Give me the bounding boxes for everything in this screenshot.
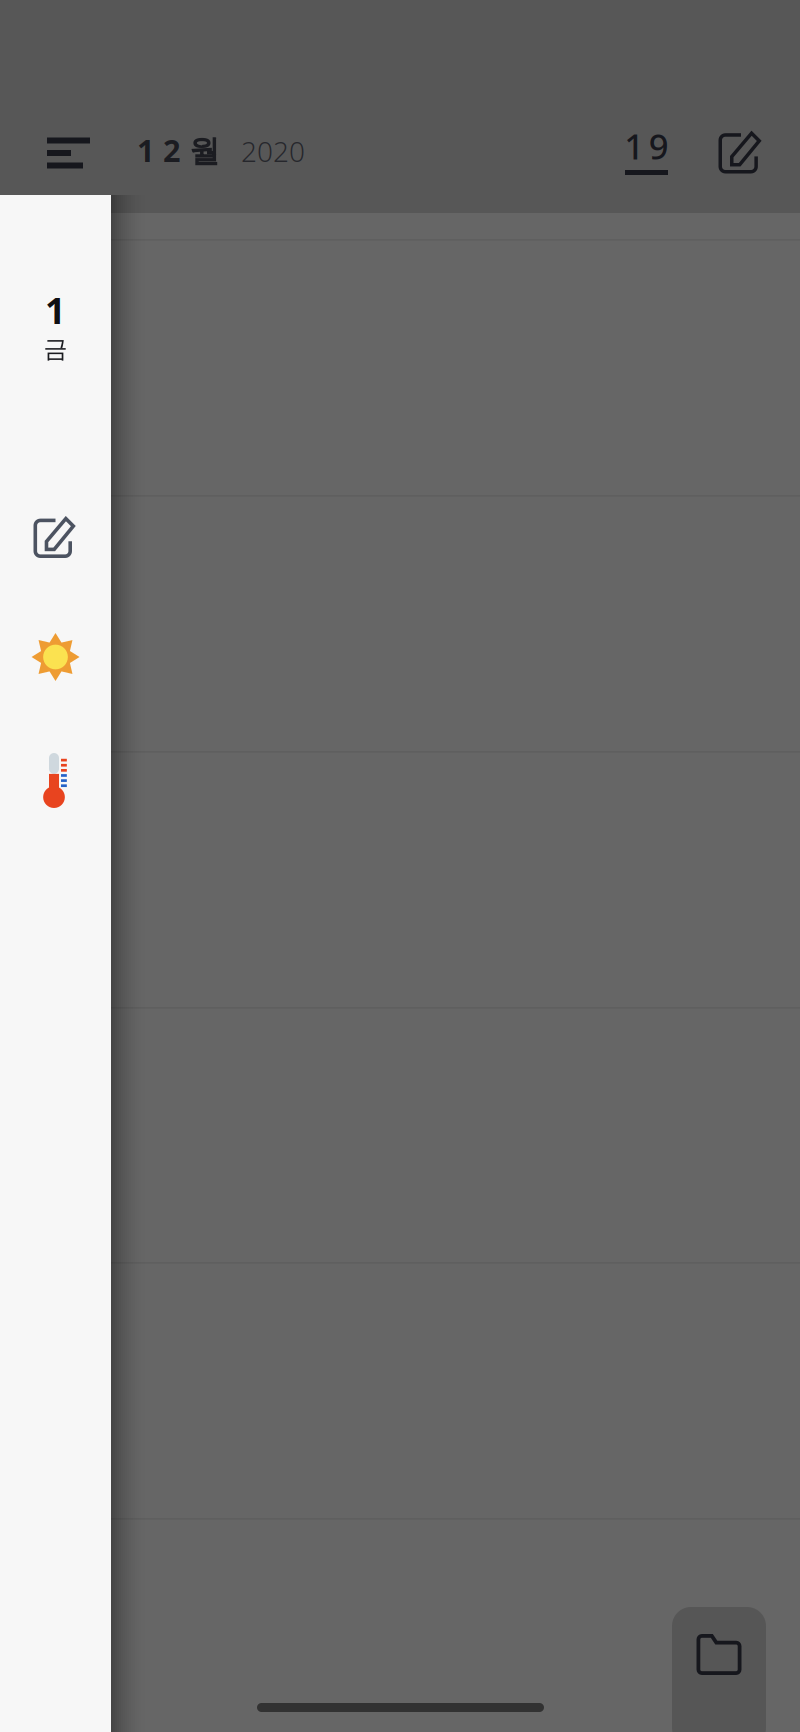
staticText: 1 2 월 — [137, 130, 220, 170]
button[interactable]: Today — [610, 117, 682, 189]
staticText: 금 — [43, 334, 67, 364]
staticText: 1 — [45, 286, 66, 334]
button[interactable]: Compose — [705, 115, 777, 187]
button[interactable]: 1 2 월 — [137, 114, 305, 186]
button[interactable]: 1 — [0, 279, 111, 361]
staticText: 1 — [624, 123, 644, 169]
staticText: 9 — [649, 123, 669, 169]
button[interactable]: Folders — [672, 1607, 766, 1732]
button[interactable]: Menu — [32, 117, 104, 189]
button[interactable]: Weather — [0, 627, 111, 687]
button[interactable]: New entry — [0, 501, 111, 571]
button[interactable]: Temperature — [0, 753, 111, 815]
staticText: 2020 — [241, 132, 305, 170]
